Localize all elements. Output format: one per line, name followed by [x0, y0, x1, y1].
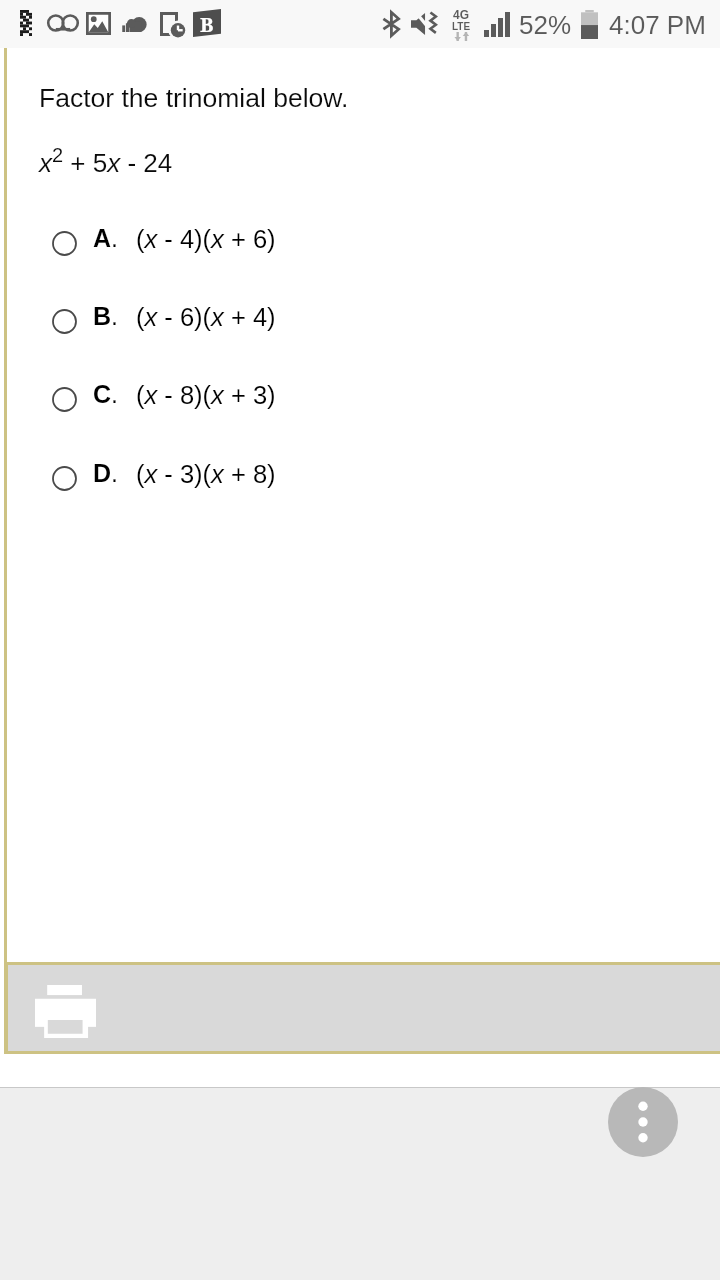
- staticText: LTE: [452, 21, 471, 32]
- staticText: D.: [93, 459, 118, 487]
- staticText: x2 + 5x - 24: [39, 144, 173, 178]
- button[interactable]: C.: [0, 376, 720, 422]
- button[interactable]: Print: [4, 962, 720, 1054]
- staticText: (x - 8)(x + 3): [136, 381, 276, 409]
- staticText: (x - 3)(x + 8): [136, 460, 276, 488]
- button[interactable]: D.: [0, 455, 720, 501]
- staticText: B: [200, 11, 214, 38]
- button[interactable]: B.: [0, 298, 720, 344]
- button[interactable]: More options: [608, 1087, 678, 1157]
- staticText: (x - 4)(x + 6): [136, 225, 276, 253]
- staticText: 52%: [519, 10, 572, 39]
- staticText: A.: [93, 224, 118, 252]
- staticText: Factor the trinomial below.: [39, 83, 349, 113]
- staticText: C.: [93, 380, 118, 408]
- staticText: 4G: [453, 8, 470, 21]
- staticText: (x - 6)(x + 4): [136, 303, 276, 331]
- button[interactable]: A.: [0, 220, 720, 266]
- staticText: 4:07 PM: [609, 10, 706, 39]
- staticText: B.: [93, 302, 118, 330]
